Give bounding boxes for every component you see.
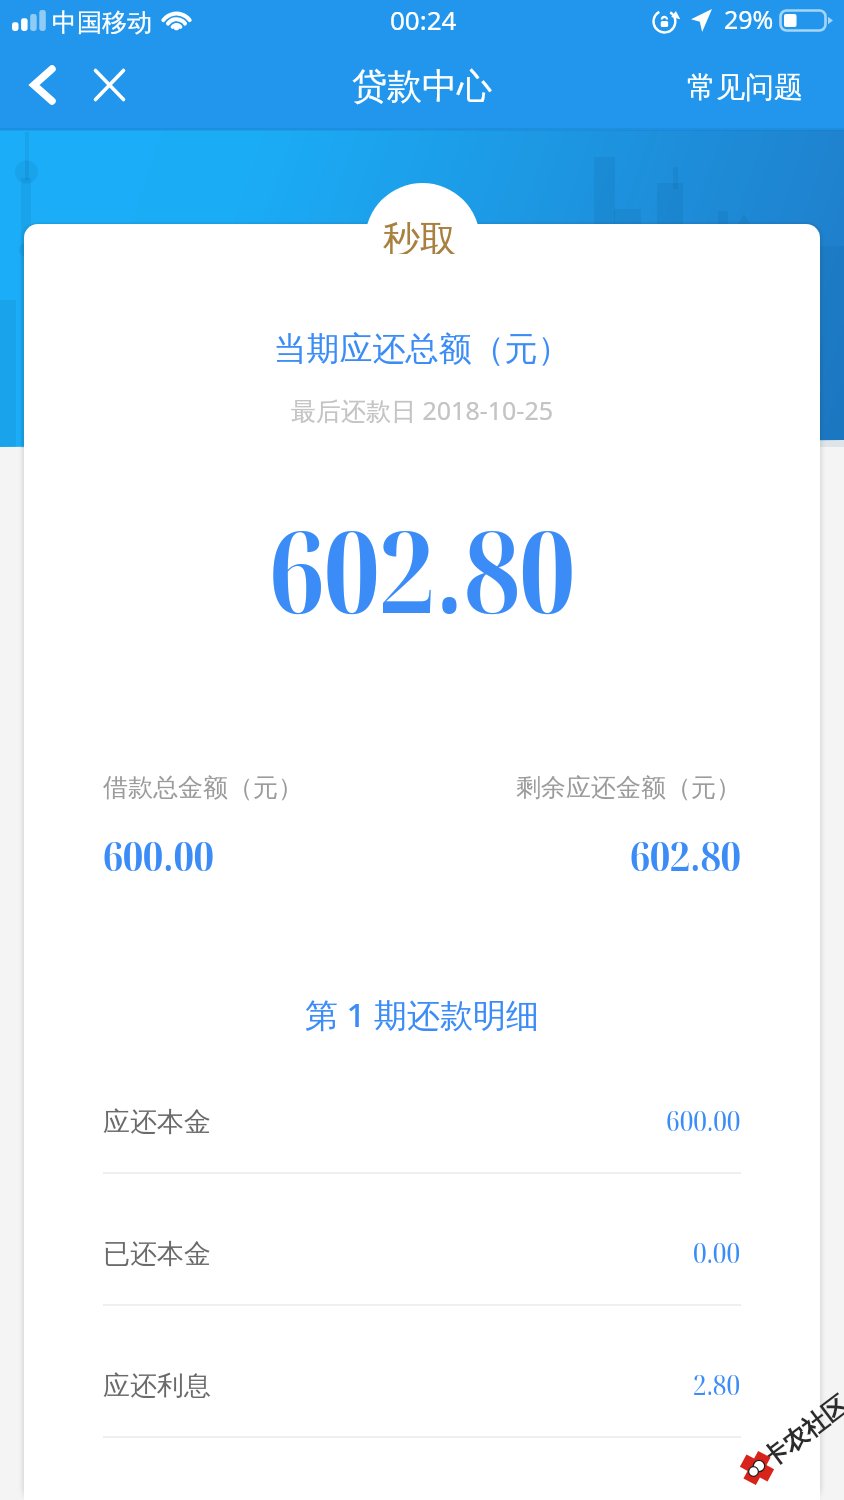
staticText: 当期应还总额（元）: [24, 328, 820, 370]
button[interactable]: 已还本金: [24, 1217, 820, 1303]
staticText: 应还利息: [103, 1369, 211, 1403]
staticText: 最后还款日 2018-10-25: [24, 393, 820, 427]
button[interactable]: 常见问题: [687, 52, 803, 130]
staticText: 602.80: [24, 492, 820, 646]
staticText: 29%: [724, 2, 774, 36]
button[interactable]: Back: [4, 52, 76, 130]
staticText: 应还本金: [103, 1105, 211, 1139]
staticText: 第 1 期还款明细: [24, 992, 820, 1037]
staticText: 00:24: [390, 2, 457, 37]
staticText: 600.00: [666, 1102, 741, 1139]
staticText: 借款总金额（元）: [103, 772, 303, 803]
button[interactable]: 应还利息: [24, 1349, 820, 1435]
button[interactable]: 应还本金: [24, 1085, 820, 1171]
staticText: 秒取: [383, 216, 457, 254]
button[interactable]: Close: [78, 52, 142, 130]
staticText: 常见问题: [687, 69, 803, 106]
staticText: 602.80: [630, 828, 741, 882]
staticText: 卡农社区: [756, 1389, 844, 1474]
staticText: 贷款中心: [0, 64, 844, 108]
staticText: 剩余应还金额（元）: [516, 772, 741, 803]
staticText: 已还本金: [103, 1237, 211, 1271]
staticText: 0.00: [693, 1234, 741, 1271]
staticText: 中国移动: [52, 7, 152, 38]
staticText: 2.80: [693, 1366, 741, 1403]
staticText: 600.00: [103, 828, 214, 882]
